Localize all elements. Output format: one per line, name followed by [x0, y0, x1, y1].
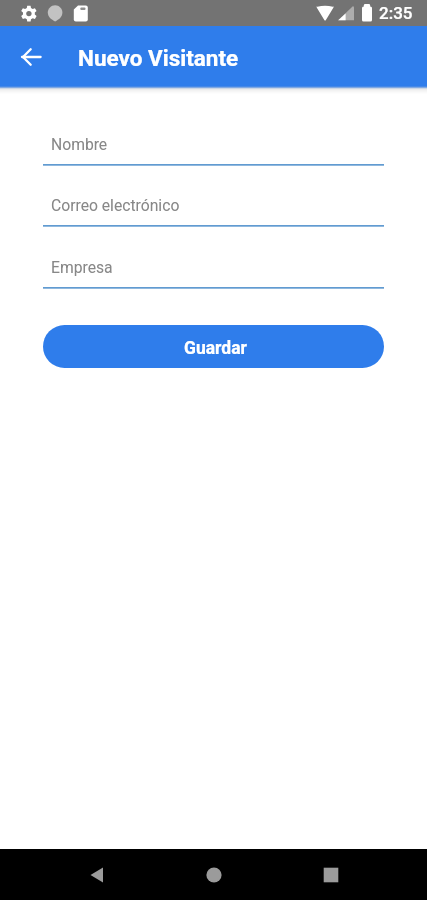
button[interactable]: Home [189, 850, 239, 900]
staticText: 2:35 [379, 3, 413, 23]
staticText: Correo electrónico [51, 196, 180, 214]
button[interactable]: Nombre [43, 130, 384, 166]
button[interactable]: Recent apps [306, 850, 356, 900]
button[interactable]: Empresa [43, 253, 384, 289]
button[interactable]: Correo electrónico [43, 191, 384, 227]
staticText: Nombre [51, 135, 108, 153]
staticText: Nuevo Visitante [78, 45, 239, 71]
staticText: Empresa [51, 258, 113, 276]
button[interactable]: Guardar [43, 325, 384, 368]
staticText: Guardar [184, 338, 247, 359]
button[interactable]: Back [72, 850, 122, 900]
button[interactable]: Back [12, 36, 52, 76]
